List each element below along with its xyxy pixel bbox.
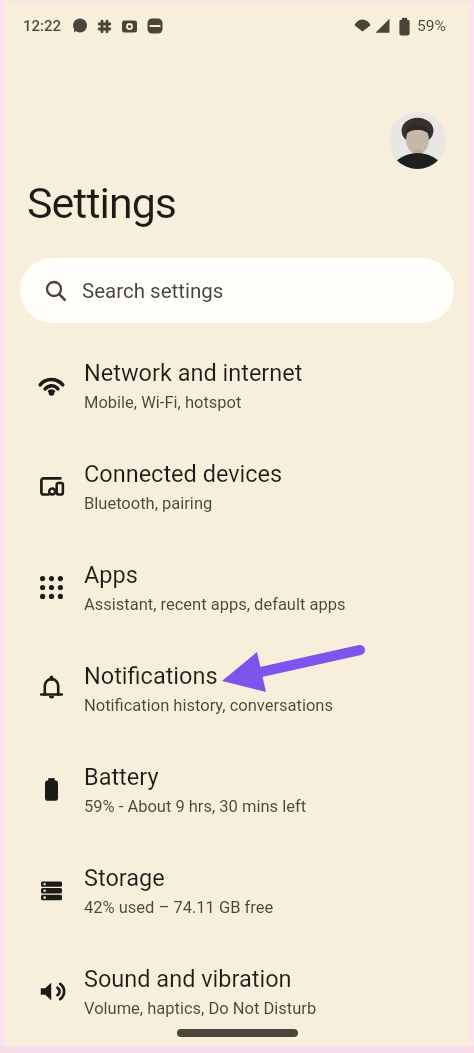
button[interactable] xyxy=(389,112,446,169)
staticText: Assistant, recent apps, default apps xyxy=(84,595,346,614)
staticText: Battery xyxy=(84,763,159,791)
staticText: 59% xyxy=(417,17,446,35)
staticText: 12:22 xyxy=(23,17,62,35)
button[interactable]: Notifications xyxy=(0,638,474,739)
staticText: Storage xyxy=(84,864,165,892)
staticText: Notifications xyxy=(84,662,218,690)
button[interactable]: Search settings xyxy=(20,258,454,323)
staticText: 59% - About 9 hrs, 30 mins left xyxy=(84,797,307,816)
staticText: Bluetooth, pairing xyxy=(84,494,213,513)
button[interactable]: Apps xyxy=(0,537,474,638)
staticText: Settings xyxy=(27,178,177,228)
staticText: Connected devices xyxy=(84,460,283,488)
button[interactable]: Battery xyxy=(0,739,474,840)
staticText: Volume, haptics, Do Not Disturb xyxy=(84,999,317,1018)
button[interactable]: Connected devices xyxy=(0,436,474,537)
staticText: Sound and vibration xyxy=(84,965,292,993)
staticText: Mobile, Wi-Fi, hotspot xyxy=(84,393,242,412)
button[interactable]: Network and internet xyxy=(0,335,474,436)
staticText: Notification history, conversations xyxy=(84,696,333,715)
button[interactable]: Storage xyxy=(0,840,474,941)
staticText: 42% used – 74.11 GB free xyxy=(84,898,274,917)
button[interactable]: Sound and vibration xyxy=(0,941,474,1042)
staticText: Apps xyxy=(84,561,138,589)
staticText: Network and internet xyxy=(84,359,303,387)
staticText: Search settings xyxy=(82,279,224,303)
